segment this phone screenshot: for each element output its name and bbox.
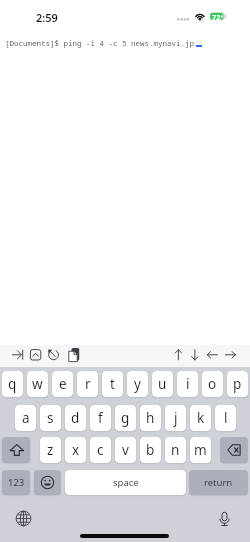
- staticText: v: [122, 441, 129, 459]
- staticText: j: [174, 409, 178, 427]
- staticText: g: [121, 409, 130, 427]
- staticText: r: [85, 375, 91, 393]
- button[interactable]: o: [202, 371, 223, 397]
- button[interactable]: return: [189, 470, 248, 495]
- button[interactable]: x: [65, 437, 86, 463]
- staticText: f: [98, 409, 103, 427]
- staticText: u: [158, 375, 167, 393]
- button[interactable]: e: [52, 371, 73, 397]
- button[interactable]: w: [27, 371, 48, 397]
- staticText: q: [8, 375, 17, 393]
- staticText: c: [97, 441, 104, 459]
- button[interactable]: r: [77, 371, 98, 397]
- button[interactable]: Paste: [64, 346, 82, 364]
- button[interactable]: Shift: [2, 437, 30, 463]
- button[interactable]: Left: [203, 346, 221, 364]
- staticText: [Documents]$ ping -i 4 -c 5 news.mynavi.…: [5, 38, 194, 48]
- button[interactable]: Emoji: [34, 470, 61, 495]
- staticText: e: [59, 375, 67, 393]
- button[interactable]: z: [40, 437, 61, 463]
- staticText: x: [72, 441, 80, 459]
- staticText: i: [186, 375, 190, 393]
- button[interactable]: Up: [169, 346, 187, 364]
- staticText: a: [22, 409, 30, 427]
- staticText: k: [197, 409, 205, 427]
- button[interactable]: l: [215, 405, 236, 431]
- staticText: 123: [8, 476, 25, 489]
- staticText: 72: [212, 12, 221, 22]
- staticText: 2:59: [36, 10, 58, 25]
- button[interactable]: Backspace: [220, 437, 248, 463]
- staticText: y: [134, 375, 141, 393]
- button[interactable]: Tab: [9, 346, 27, 364]
- button[interactable]: p: [227, 371, 248, 397]
- button[interactable]: c: [90, 437, 111, 463]
- button[interactable]: Down: [186, 346, 204, 364]
- staticText: n: [171, 441, 180, 459]
- staticText: h: [146, 409, 155, 427]
- button[interactable]: History: [45, 346, 63, 364]
- button[interactable]: v: [115, 437, 136, 463]
- button[interactable]: f: [90, 405, 111, 431]
- staticText: l: [224, 409, 228, 427]
- button[interactable]: n: [165, 437, 186, 463]
- staticText: z: [47, 441, 54, 459]
- button[interactable]: a: [15, 405, 36, 431]
- button[interactable]: t: [102, 371, 123, 397]
- staticText: space: [113, 476, 139, 489]
- button[interactable]: k: [190, 405, 211, 431]
- button[interactable]: j: [165, 405, 186, 431]
- staticText: s: [47, 409, 54, 427]
- button[interactable]: Next keyboard: [13, 508, 34, 529]
- button[interactable]: q: [2, 371, 23, 397]
- button[interactable]: d: [65, 405, 86, 431]
- staticText: p: [233, 375, 242, 393]
- button[interactable]: h: [140, 405, 161, 431]
- button[interactable]: b: [140, 437, 161, 463]
- staticText: t: [110, 375, 115, 393]
- staticText: return: [204, 476, 233, 489]
- button[interactable]: Right: [221, 346, 239, 364]
- staticText: b: [146, 441, 155, 459]
- button[interactable]: u: [152, 371, 173, 397]
- staticText: d: [71, 409, 80, 427]
- button[interactable]: g: [115, 405, 136, 431]
- button[interactable]: i: [177, 371, 198, 397]
- button[interactable]: s: [40, 405, 61, 431]
- button[interactable]: m: [190, 437, 211, 463]
- button[interactable]: 123: [2, 470, 30, 495]
- staticText: o: [208, 375, 217, 393]
- button[interactable]: Dictation: [214, 509, 235, 530]
- staticText: w: [32, 375, 43, 393]
- button[interactable]: space: [65, 470, 186, 495]
- button[interactable]: Control: [27, 346, 45, 364]
- button[interactable]: y: [127, 371, 148, 397]
- staticText: m: [194, 441, 207, 459]
